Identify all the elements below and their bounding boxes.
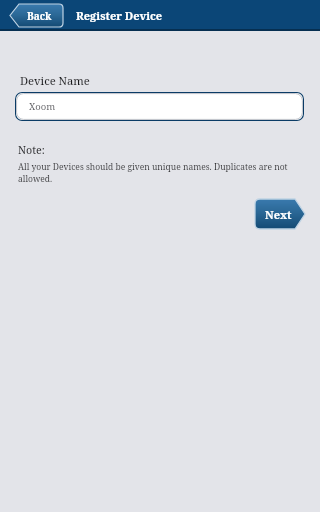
staticText: Device Name [20,73,90,88]
staticText: Xoom [29,100,56,113]
button[interactable]: Xoom [15,92,304,121]
staticText: Next [265,207,292,222]
button[interactable]: Next [255,199,305,229]
button[interactable]: Back [10,4,63,27]
staticText: Note: [18,143,45,157]
staticText: All your Devices should be given unique … [18,161,310,185]
staticText: Back [27,9,52,23]
staticText: Register Device [76,8,163,23]
